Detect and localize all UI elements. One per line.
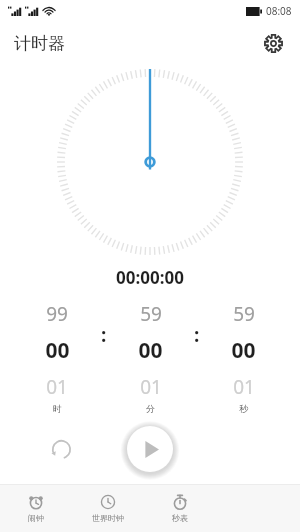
- staticText: 08:08: [266, 4, 292, 18]
- staticText: 00: [231, 336, 256, 365]
- button[interactable]: 秒表: [144, 485, 216, 532]
- staticText: 世界时钟: [92, 513, 124, 523]
- staticText: 分: [146, 403, 155, 414]
- staticText: 00: [45, 336, 70, 365]
- staticText: 秒: [239, 403, 248, 414]
- button[interactable]: 99: [20, 301, 94, 414]
- staticText: 01: [46, 374, 68, 400]
- staticText: 00: [138, 336, 163, 365]
- staticText: 59: [140, 301, 162, 327]
- button[interactable]: 59: [114, 301, 187, 414]
- staticText: 59: [233, 301, 255, 327]
- staticText: 时: [53, 403, 62, 414]
- staticText: 秒表: [172, 513, 188, 523]
- staticText: 01: [233, 374, 255, 400]
- staticText: 00:00:00: [116, 266, 184, 289]
- staticText: 99: [46, 301, 68, 327]
- button[interactable]: 闹钟: [0, 485, 72, 532]
- staticText: 闹钟: [28, 513, 44, 523]
- staticText: :: [194, 322, 200, 348]
- button[interactable]: 59: [207, 301, 280, 414]
- staticText: 计时器: [14, 33, 65, 54]
- button[interactable]: Start: [127, 426, 173, 472]
- button[interactable]: Reset: [44, 432, 78, 466]
- staticText: :: [101, 322, 107, 348]
- staticText: 01: [140, 374, 162, 400]
- button[interactable]: Settings: [256, 26, 290, 60]
- button[interactable]: 世界时钟: [72, 485, 144, 532]
